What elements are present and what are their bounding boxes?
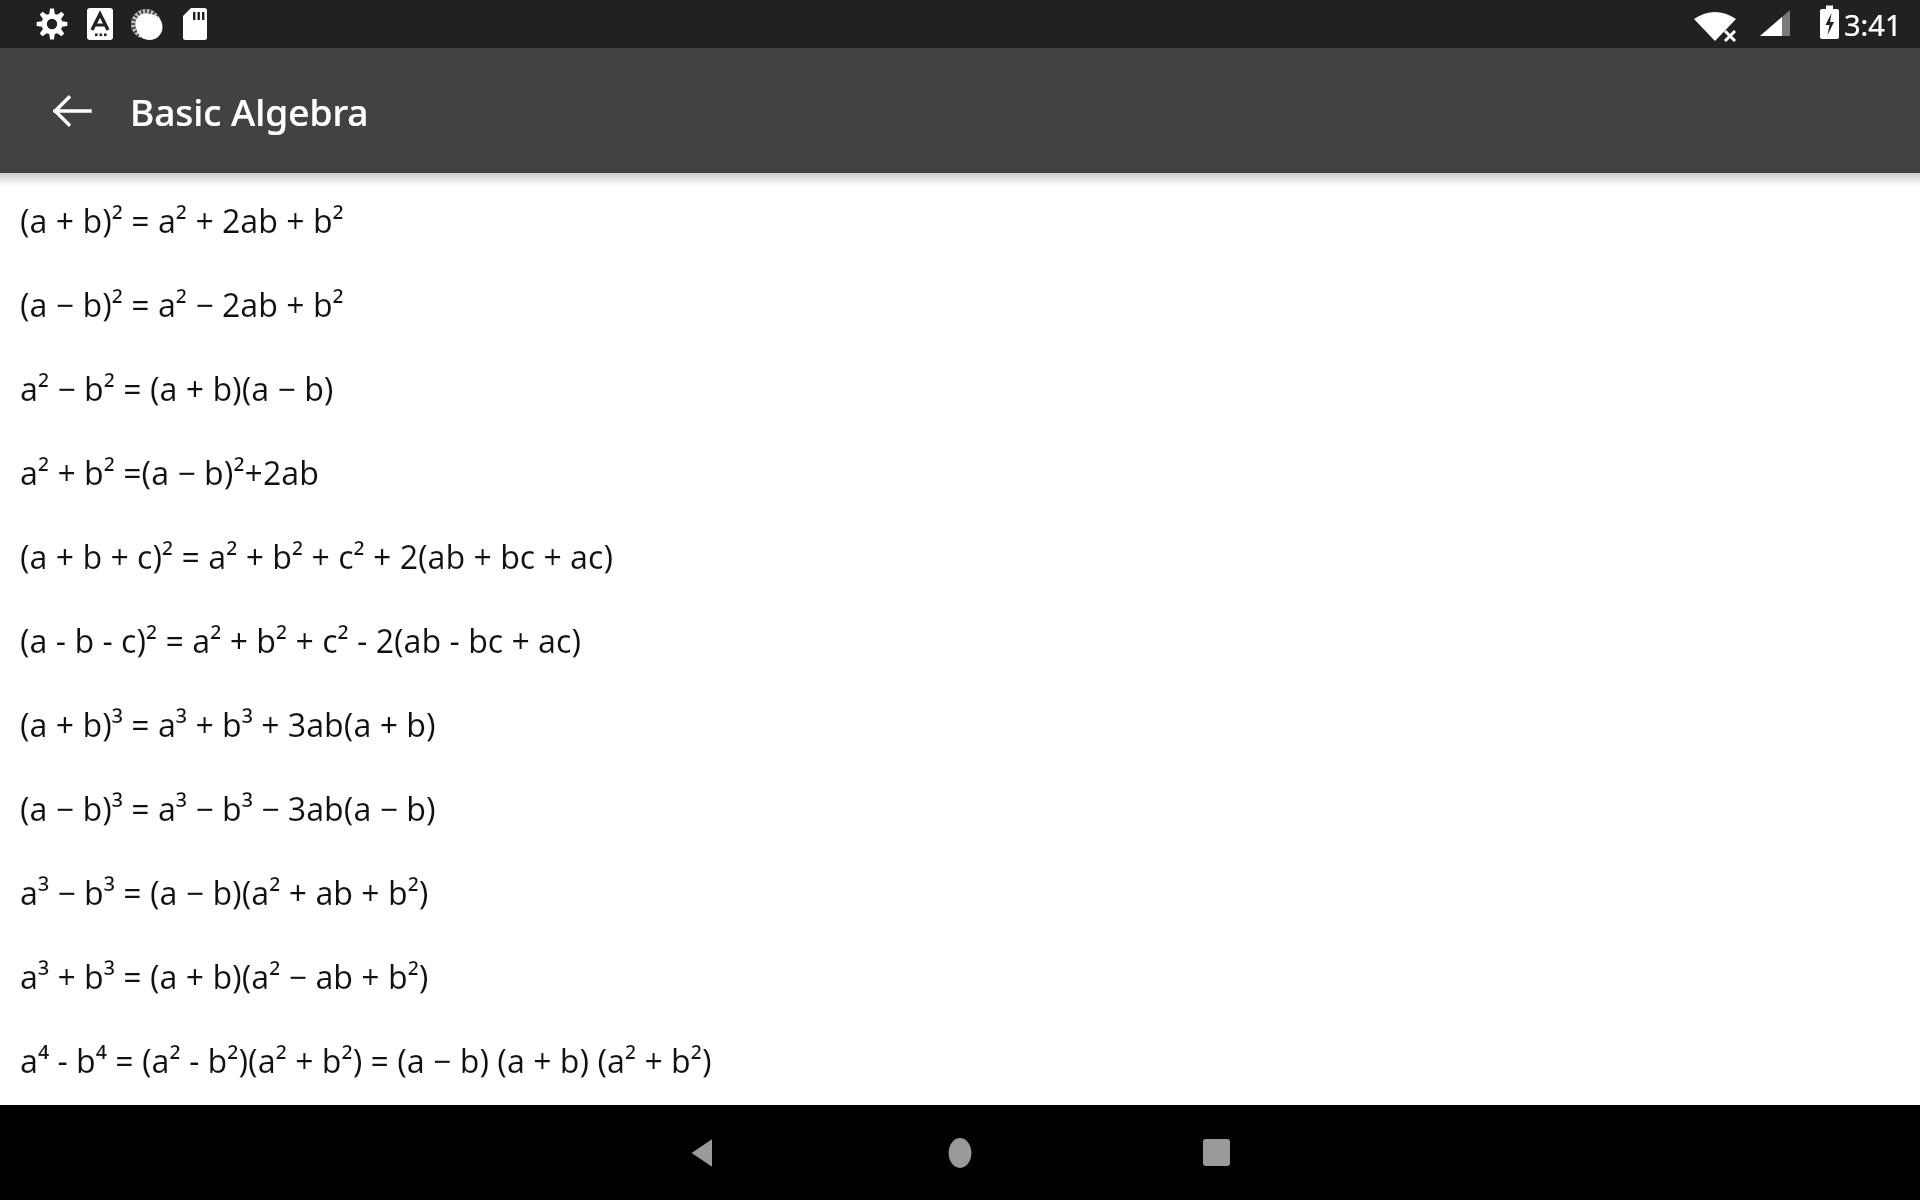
button[interactable]: (a − b)³ = a³ − b³ − 3ab(a − b): [0, 767, 1920, 851]
button[interactable]: a² − b² = (a + b)(a − b): [0, 347, 1920, 431]
staticText: (a + b + c)² = a² + b² + c² + 2(ab + bc …: [20, 535, 614, 579]
staticText: (a - b - c)² = a² + b² + c² - 2(ab - bc …: [20, 619, 582, 663]
button[interactable]: a³ + b³ = (a + b)(a² − ab + b²): [0, 935, 1920, 1019]
staticText: a³ − b³ = (a − b)(a² + ab + b²): [20, 871, 429, 915]
staticText: (a + b)³ = a³ + b³ + 3ab(a + b): [20, 703, 436, 747]
button[interactable]: a³ − b³ = (a − b)(a² + ab + b²): [0, 851, 1920, 935]
staticText: Basic Algebra: [130, 86, 369, 136]
button[interactable]: (a − b)² = a² − 2ab + b²: [0, 263, 1920, 347]
button[interactable]: a² + b² =(a − b)²+2ab: [0, 431, 1920, 515]
button[interactable]: (a + b)³ = a³ + b³ + 3ab(a + b): [0, 683, 1920, 767]
staticText: a³ + b³ = (a + b)(a² − ab + b²): [20, 955, 429, 999]
button[interactable]: Navigate up: [28, 67, 116, 155]
staticText: a⁴ - b⁴ = (a² - b²)(a² + b²) = (a − b) (…: [20, 1039, 712, 1083]
staticText: 3:41: [1844, 5, 1902, 44]
staticText: (a − b)² = a² − 2ab + b²: [20, 283, 344, 327]
button[interactable]: a⁴ - b⁴ = (a² - b²)(a² + b²) = (a − b) (…: [0, 1019, 1920, 1103]
button[interactable]: (a + b + c)² = a² + b² + c² + 2(ab + bc …: [0, 515, 1920, 599]
button[interactable]: Back: [643, 1105, 763, 1200]
button[interactable]: Home: [900, 1105, 1020, 1200]
button[interactable]: Recent apps: [1156, 1105, 1276, 1200]
button[interactable]: (a - b - c)² = a² + b² + c² - 2(ab - bc …: [0, 599, 1920, 683]
staticText: (a + b)² = a² + 2ab + b²: [20, 199, 344, 243]
button[interactable]: (a + b)² = a² + 2ab + b²: [0, 179, 1920, 263]
staticText: a² − b² = (a + b)(a − b): [20, 367, 334, 411]
staticText: a² + b² =(a − b)²+2ab: [20, 451, 319, 495]
staticText: (a − b)³ = a³ − b³ − 3ab(a − b): [20, 787, 436, 831]
